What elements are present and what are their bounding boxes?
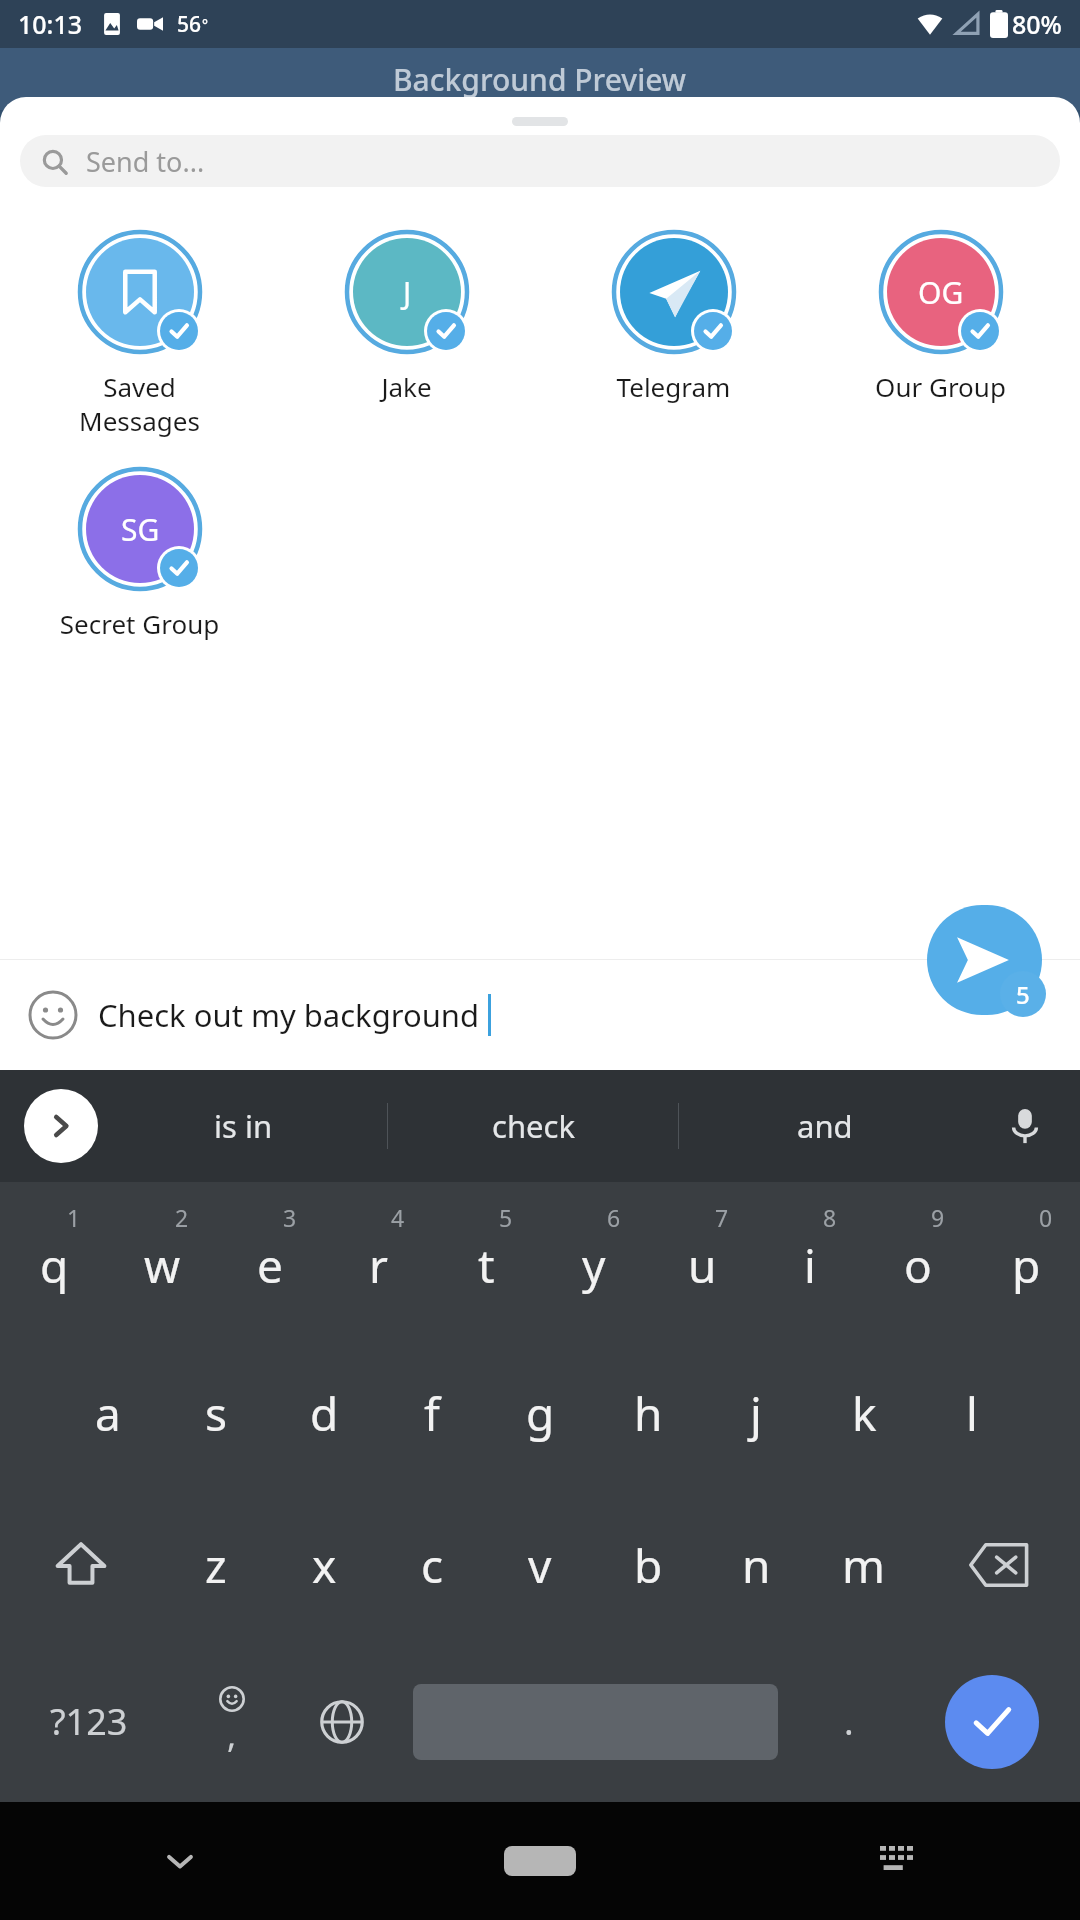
button[interactable]: d <box>270 1337 378 1489</box>
staticText: Our Group <box>807 369 1074 404</box>
staticText: r <box>369 1234 388 1297</box>
staticText: 7 <box>715 1202 729 1233</box>
button[interactable]: OG <box>807 209 1074 412</box>
staticText: c <box>421 1534 444 1597</box>
staticText: 5 <box>499 1202 513 1233</box>
button[interactable]: SG <box>6 446 273 649</box>
staticText: Jake <box>273 369 540 404</box>
staticText: Saved Messages <box>6 369 273 438</box>
staticText: e <box>257 1234 283 1297</box>
staticText: check <box>492 1105 575 1147</box>
staticText: 10:13 <box>18 7 83 41</box>
staticText: 5 <box>1016 978 1030 1011</box>
staticText: ° <box>202 15 208 34</box>
staticText: Secret Group <box>6 606 273 641</box>
button[interactable]: 6 <box>540 1182 648 1337</box>
button[interactable]: n <box>702 1489 810 1641</box>
button[interactable]: ?123 <box>0 1641 177 1802</box>
staticText: t <box>478 1234 495 1297</box>
staticText: y <box>582 1234 606 1297</box>
button[interactable]: J <box>273 209 540 412</box>
button[interactable]: z <box>162 1489 270 1641</box>
staticText: d <box>310 1382 339 1445</box>
staticText: m <box>842 1534 886 1597</box>
staticText: k <box>852 1382 877 1445</box>
staticText: 0 <box>1039 1202 1053 1233</box>
staticText: i <box>804 1234 816 1297</box>
staticText: OG <box>918 272 964 313</box>
button[interactable]: c <box>378 1489 486 1641</box>
staticText: n <box>742 1534 771 1597</box>
button[interactable]: x <box>270 1489 378 1641</box>
button[interactable]: 3 <box>216 1182 324 1337</box>
button[interactable]: 1 <box>0 1182 108 1337</box>
button[interactable]: Change language <box>287 1641 397 1802</box>
button[interactable]: h <box>594 1337 702 1489</box>
button[interactable]: Send <box>927 905 1042 1015</box>
staticText: , <box>227 1712 237 1758</box>
button[interactable]: 2 <box>108 1182 216 1337</box>
button[interactable]: Saved Messages <box>6 209 273 446</box>
button[interactable]: is in <box>98 1070 388 1182</box>
button[interactable]: Hide keyboard <box>0 1802 360 1920</box>
button[interactable]: 8 <box>756 1182 864 1337</box>
staticText: 2 <box>175 1202 189 1233</box>
button[interactable]: and <box>679 1070 970 1182</box>
staticText: v <box>528 1534 552 1597</box>
button[interactable]: f <box>378 1337 486 1489</box>
button[interactable]: Done <box>904 1641 1080 1802</box>
staticText: Background Preview <box>393 59 687 100</box>
staticText: and <box>797 1105 853 1147</box>
staticText: f <box>424 1382 440 1445</box>
button[interactable]: 0 <box>972 1182 1080 1337</box>
staticText: o <box>904 1234 932 1297</box>
staticText: 56 <box>177 10 202 39</box>
button[interactable]: More suggestions <box>24 1089 98 1163</box>
button[interactable]: j <box>702 1337 810 1489</box>
button[interactable]: Telegram <box>540 209 807 412</box>
staticText: 4 <box>391 1202 405 1233</box>
staticText: Telegram <box>540 369 807 404</box>
staticText: s <box>205 1382 228 1445</box>
button[interactable]: 9 <box>864 1182 972 1337</box>
staticText: ?123 <box>50 1697 128 1746</box>
button[interactable]: l <box>918 1337 1026 1489</box>
button[interactable]: . <box>794 1641 904 1802</box>
button[interactable]: Backspace <box>918 1489 1080 1641</box>
staticText: g <box>526 1382 555 1445</box>
button[interactable]: Switch keyboard <box>720 1802 1080 1920</box>
staticText: 80% <box>1012 7 1062 41</box>
button[interactable]: Voice input <box>970 1070 1080 1182</box>
staticText: x <box>312 1534 337 1597</box>
button[interactable]: k <box>810 1337 918 1489</box>
staticText: a <box>95 1382 121 1445</box>
button[interactable]: s <box>162 1337 270 1489</box>
button[interactable]: a <box>54 1337 162 1489</box>
button[interactable]: b <box>594 1489 702 1641</box>
staticText: 8 <box>823 1202 837 1233</box>
button[interactable]: Emoji <box>24 986 82 1044</box>
staticText: w <box>144 1234 181 1297</box>
staticText: SG <box>121 509 160 550</box>
button[interactable]: Home <box>360 1802 720 1920</box>
button[interactable]: Send to... <box>20 135 1060 187</box>
button[interactable]: Shift <box>0 1489 162 1641</box>
staticText: z <box>205 1534 227 1597</box>
staticText: h <box>634 1382 663 1445</box>
staticText: Check out my background <box>98 994 480 1036</box>
staticText: . <box>844 1697 854 1746</box>
staticText: is in <box>214 1105 273 1147</box>
staticText: q <box>40 1234 69 1297</box>
button[interactable]: m <box>810 1489 918 1641</box>
button[interactable]: Emoji and comma <box>177 1641 287 1802</box>
button[interactable]: Space <box>397 1641 794 1802</box>
button[interactable]: g <box>486 1337 594 1489</box>
button[interactable]: 7 <box>648 1182 756 1337</box>
staticText: b <box>634 1534 663 1597</box>
button[interactable]: 5 <box>432 1182 540 1337</box>
staticText: 3 <box>283 1202 297 1233</box>
button[interactable]: v <box>486 1489 594 1641</box>
staticText: 1 <box>67 1202 81 1233</box>
button[interactable]: check <box>388 1070 679 1182</box>
button[interactable]: 4 <box>324 1182 432 1337</box>
